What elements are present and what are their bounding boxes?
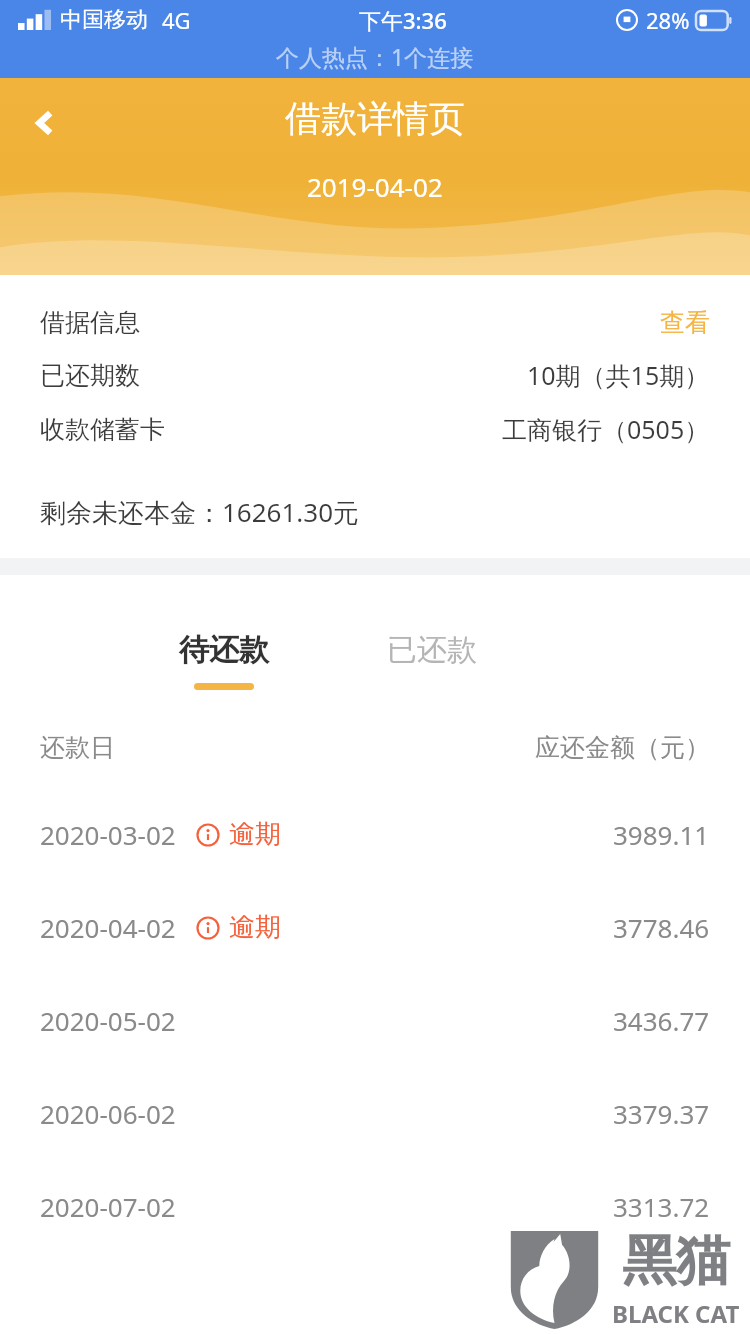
staticText: 已还期数 [40,360,140,391]
staticText: 2020-05-02 [40,1003,176,1038]
staticText: 10期（共15期） [527,358,710,392]
staticText: 中国移动 [60,6,148,34]
button[interactable]: 借据信息 [0,297,750,348]
button[interactable]: 2020-04-02 [0,908,750,947]
staticText: 剩余未还本金：16261.30元 [40,494,360,530]
staticText: 已还款 [387,631,477,669]
staticText: BLACK CAT [612,1297,740,1330]
staticText: 个人热点：1个连接 [276,41,474,72]
staticText: 下午3:36 [359,5,447,35]
staticText: 应还金额（元） [535,732,710,763]
staticText: 3436.77 [613,1003,710,1038]
staticText: 2020-03-02 [40,817,176,852]
staticText: 3379.37 [613,1096,710,1131]
staticText: 4G [162,5,191,35]
button[interactable]: 待还款 [165,627,283,694]
button[interactable]: 2020-06-02 [0,1094,750,1133]
staticText: 待还款 [179,631,269,669]
button[interactable]: 已还款 [373,627,491,673]
staticText: 3778.46 [613,910,710,945]
staticText: 还款日 [40,732,115,763]
staticText: 3313.72 [613,1189,710,1224]
staticText: 2020-04-02 [40,910,176,945]
staticText: 工商银行（0505） [502,412,710,446]
staticText: 28% [646,5,690,35]
staticText: 2019-04-02 [307,169,443,204]
staticText: 逾期 [229,818,281,851]
button[interactable]: 2020-07-02 [0,1187,750,1226]
button[interactable]: 2020-05-02 [0,1001,750,1040]
staticText: 2020-06-02 [40,1096,176,1131]
staticText: 3989.11 [613,817,710,852]
staticText: 借据信息 [40,307,140,338]
staticText: 查看 [660,307,710,338]
staticText: 收款储蓄卡 [40,414,165,445]
button[interactable]: 2020-03-02 [0,815,750,854]
button[interactable]: Back [14,92,76,154]
staticText: 逾期 [229,911,281,944]
staticText: 2020-07-02 [40,1189,176,1224]
staticText: 借款详情页 [285,96,465,141]
staticText: 黑猫 [622,1227,730,1295]
